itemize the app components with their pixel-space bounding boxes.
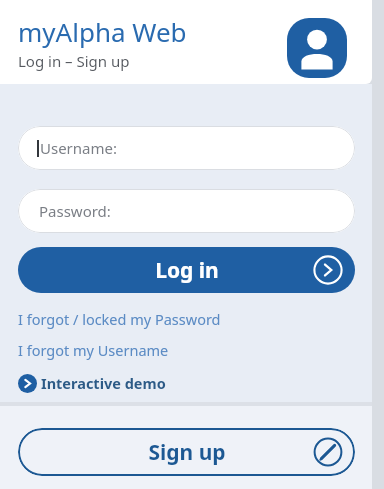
staticText: Log in – Sign up (18, 51, 130, 71)
staticText: Log in (155, 256, 219, 285)
button[interactable]: I forgot / locked my Password (18, 309, 355, 329)
staticText: Interactive demo (41, 373, 166, 393)
button[interactable]: Username: (18, 126, 355, 170)
staticText: myAlpha Web (18, 14, 187, 49)
staticText: Sign up (148, 438, 226, 467)
staticText: I forgot / locked my Password (18, 309, 221, 329)
button[interactable]: Password: (18, 189, 355, 233)
button[interactable]: Log in (18, 247, 355, 293)
staticText: Password: (39, 201, 111, 221)
staticText: Username: (40, 138, 117, 158)
button[interactable]: Account (287, 18, 347, 78)
staticText: I forgot my Username (18, 340, 169, 360)
button[interactable]: Sign up (18, 428, 355, 476)
button[interactable]: Interactive demo (18, 373, 166, 393)
button[interactable]: I forgot my Username (18, 340, 355, 360)
